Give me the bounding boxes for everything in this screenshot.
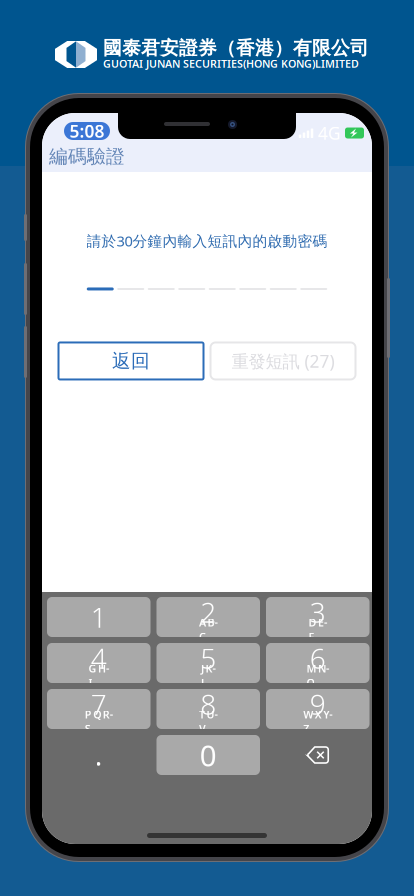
staticText: 7 — [91, 685, 107, 723]
button[interactable]: Delete — [266, 735, 369, 775]
button[interactable]: 返回 — [58, 342, 203, 379]
staticText: 5:08 — [69, 119, 104, 142]
staticText: WXYZ — [303, 707, 332, 736]
staticText: 1 — [91, 598, 107, 636]
button[interactable]: 1 — [47, 597, 150, 637]
staticText: 編碼驗證 — [49, 145, 125, 168]
button[interactable]: 4 — [47, 643, 150, 683]
button[interactable]: 重發短訊 (27) — [210, 342, 355, 379]
staticText: . — [95, 736, 103, 774]
staticText: 4 — [91, 639, 107, 677]
staticText: 5 — [200, 639, 216, 677]
button[interactable]: 5 — [156, 643, 260, 683]
staticText: JKL — [201, 661, 216, 690]
button[interactable]: 7 — [47, 689, 150, 729]
button[interactable]: 6 — [266, 643, 369, 683]
staticText: GUOTAI JUNAN SECURITIES(HONG KONG)LIMITE… — [103, 56, 359, 71]
button[interactable]: 2 — [156, 597, 260, 637]
staticText: GHI — [88, 661, 109, 690]
button[interactable]: 8 — [156, 689, 260, 729]
staticText: 國泰君安證券（香港）有限公司 — [103, 36, 369, 59]
staticText: MNO — [306, 661, 329, 690]
staticText: 0 — [200, 735, 217, 774]
button[interactable]: 3 — [266, 597, 369, 637]
staticText: PQRS — [85, 707, 113, 736]
staticText: 3 — [310, 593, 326, 631]
button[interactable]: 9 — [266, 689, 369, 729]
staticText: 返回 — [112, 349, 150, 372]
staticText: 2 — [200, 593, 216, 631]
staticText: 9 — [310, 685, 326, 723]
staticText: 請於30分鐘內輸入短訊內的啟動密碼 — [86, 231, 327, 250]
button[interactable]: Decimal point — [47, 735, 150, 775]
staticText: 8 — [200, 685, 216, 723]
staticText: 重發短訊 (27) — [231, 349, 334, 372]
staticText: 6 — [310, 639, 326, 677]
button[interactable]: 0 — [156, 735, 260, 775]
staticText: DEF — [308, 615, 327, 644]
staticText: TUV — [199, 707, 218, 736]
staticText: 4G — [318, 121, 341, 144]
staticText: ABC — [199, 615, 218, 644]
